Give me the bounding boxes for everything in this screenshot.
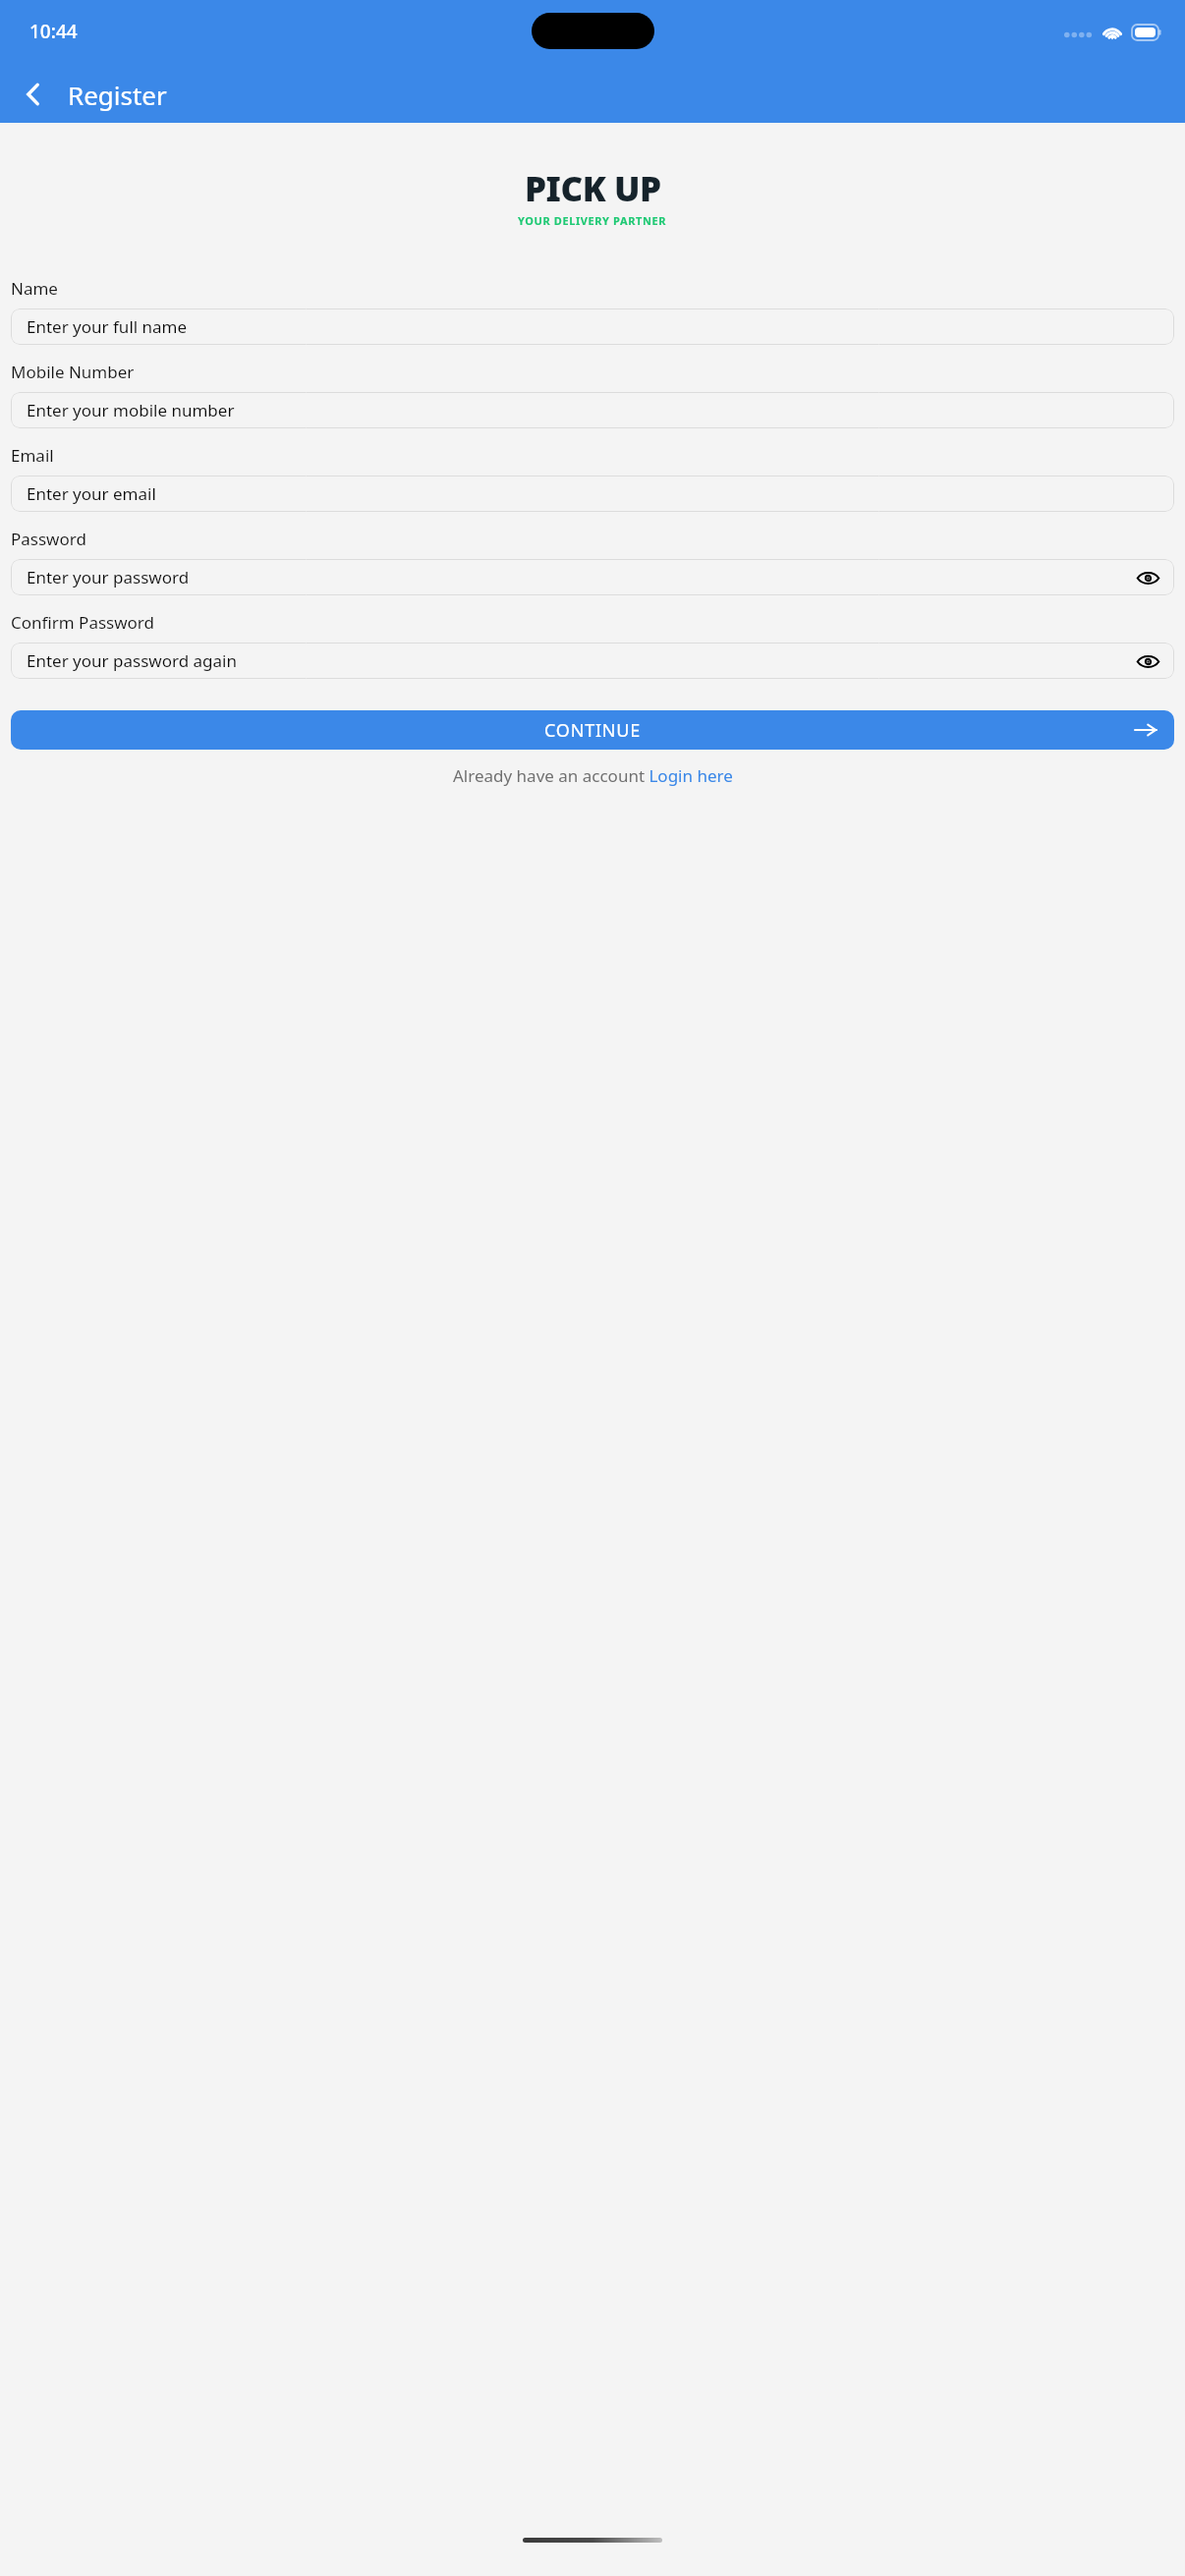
- button[interactable]: Back: [12, 73, 55, 116]
- staticText: PICK UP: [525, 165, 661, 212]
- staticText: Mobile Number: [11, 361, 135, 383]
- button[interactable]: Already have an account Login here: [453, 764, 733, 787]
- button[interactable]: Enter your mobile number: [11, 392, 1174, 428]
- staticText: Enter your password again: [27, 649, 1135, 672]
- button[interactable]: CONTINUE: [11, 710, 1174, 750]
- button[interactable]: Enter your email: [11, 476, 1174, 512]
- staticText: YOUR DELIVERY PARTNER: [518, 213, 667, 228]
- staticText: Email: [11, 444, 54, 467]
- button[interactable]: Enter your password again: [11, 643, 1174, 679]
- staticText: Password: [11, 528, 86, 550]
- staticText: Register: [68, 78, 167, 112]
- staticText: Enter your password: [27, 566, 1135, 588]
- staticText: CONTINUE: [544, 718, 642, 743]
- staticText: 10:44: [29, 19, 78, 44]
- staticText: Confirm Password: [11, 611, 154, 634]
- staticText: Enter your mobile number: [27, 399, 1160, 421]
- staticText: Enter your full name: [27, 315, 1160, 338]
- staticText: Name: [11, 277, 58, 300]
- button[interactable]: Show password: [1135, 648, 1160, 674]
- button[interactable]: Show password: [1135, 565, 1160, 590]
- button[interactable]: Enter your password: [11, 559, 1174, 595]
- staticText: Enter your email: [27, 482, 1160, 505]
- button[interactable]: Enter your full name: [11, 308, 1174, 345]
